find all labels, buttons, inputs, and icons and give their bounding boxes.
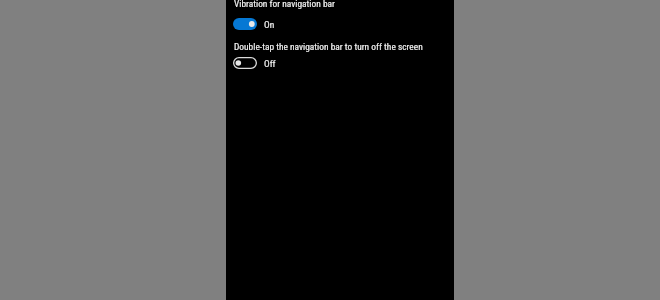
staticText: Vibration for navigation bar [234, 0, 335, 9]
button[interactable]: Double-tap the navigation bar to turn of… [231, 54, 291, 71]
staticText: Double-tap the navigation bar to turn of… [234, 41, 423, 52]
staticText: Off [264, 58, 276, 69]
staticText: On [264, 19, 275, 30]
button[interactable]: Vibration for navigation bar, On [231, 15, 291, 32]
